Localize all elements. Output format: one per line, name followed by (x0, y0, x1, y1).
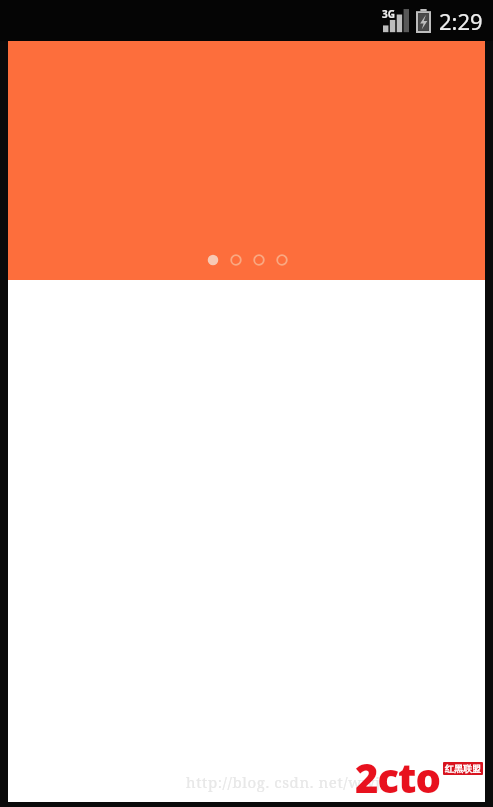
button[interactable]: Page 1 (201, 248, 224, 271)
staticText: 3G (382, 7, 395, 21)
staticText: http://blog. csdn. net/wwj_ (186, 772, 388, 792)
button[interactable]: Page 2 (224, 248, 247, 271)
button[interactable]: Page 4 (270, 248, 293, 271)
button[interactable]: Page 3 (247, 248, 270, 271)
staticText: 红黑联盟 (445, 763, 481, 774)
staticText: 2:29 (439, 6, 483, 36)
staticText: 2cto (355, 750, 440, 802)
button[interactable]: Page 1 (8, 41, 485, 280)
